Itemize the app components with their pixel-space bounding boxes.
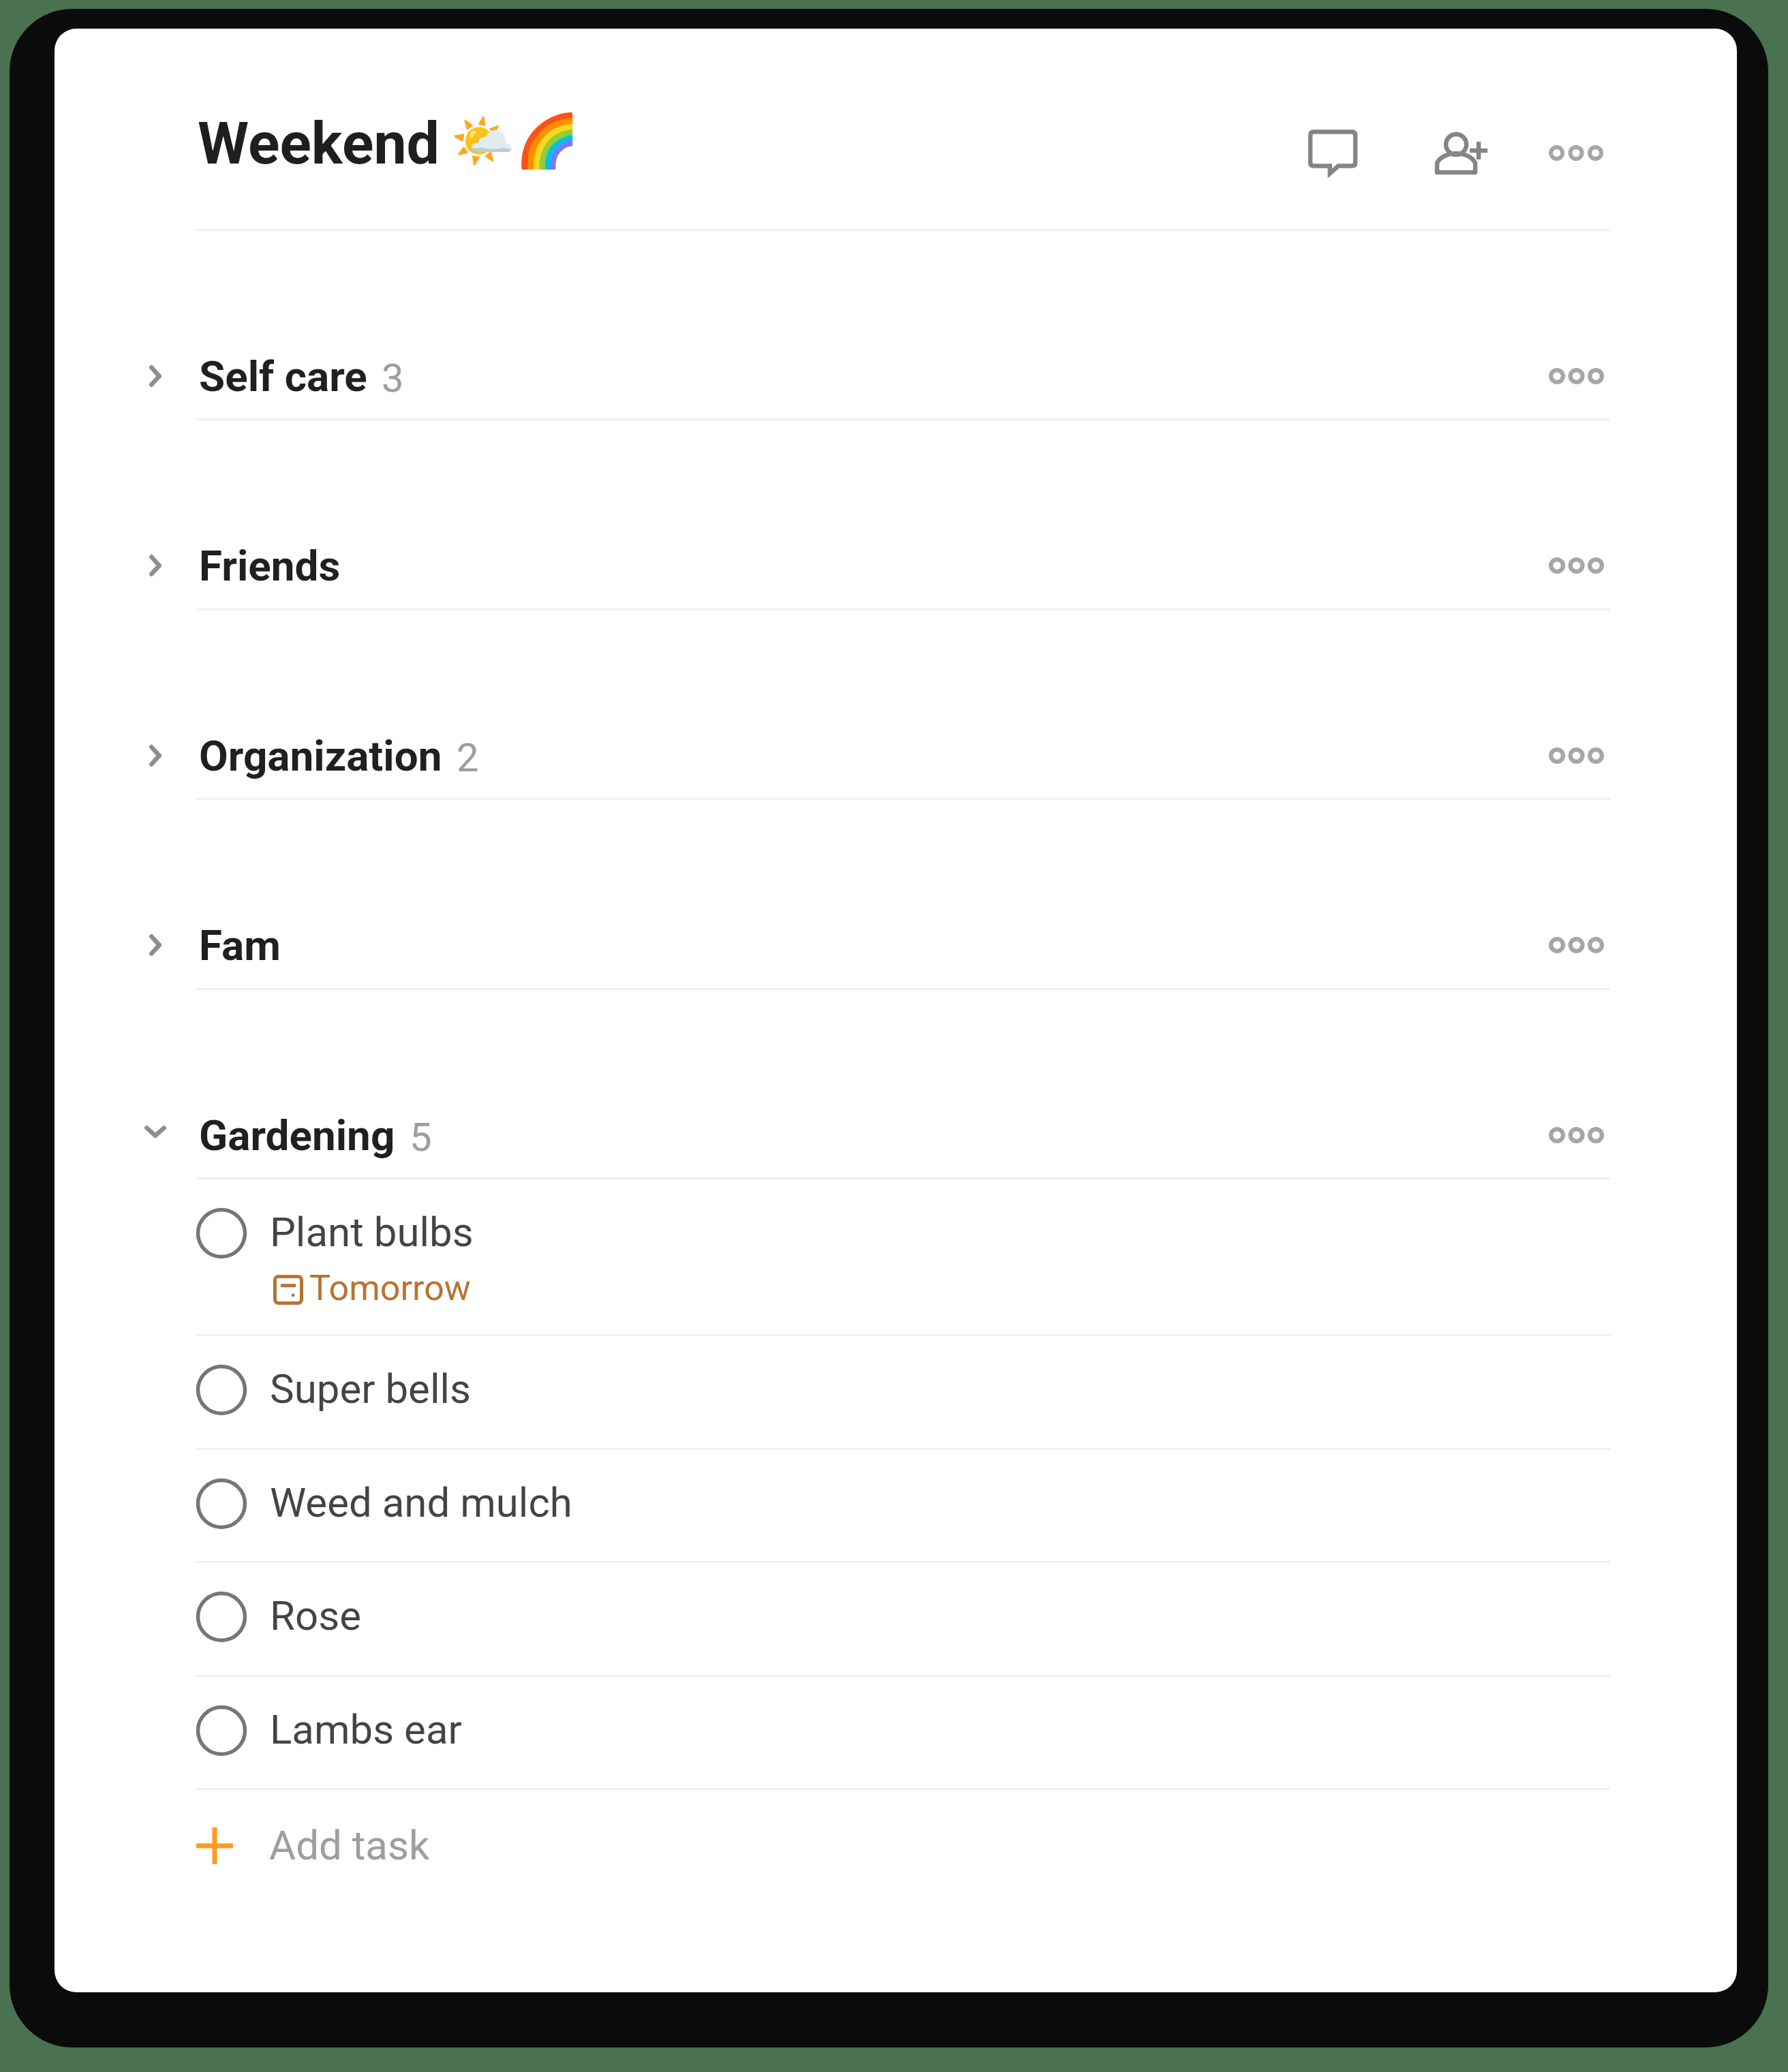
button[interactable]: Section options [1520,1079,1632,1191]
button[interactable]: Complete task [55,1675,1737,1789]
button[interactable]: Complete task [55,1561,1737,1675]
button[interactable]: Section options [1520,889,1632,1001]
staticText: 🌤️🌈 [450,110,580,171]
staticText: 5 [410,1114,432,1160]
staticText: Fam [199,921,281,970]
button[interactable]: Section options [1520,510,1632,621]
button[interactable]: Complete task [191,1473,252,1534]
button[interactable]: Self care [55,229,1737,418]
staticText: Organization [199,731,442,781]
button[interactable]: Complete task [55,1448,1737,1562]
staticText: Gardening [199,1111,395,1160]
staticText: Weekend [198,109,440,178]
button[interactable]: Complete task [191,1359,252,1421]
button[interactable]: Fam [55,798,1737,987]
button[interactable]: Complete task [55,1177,1737,1334]
staticText: Rose [270,1592,361,1639]
button[interactable]: Section options [1520,320,1632,432]
staticText: Super bells [270,1365,472,1412]
staticText: Lambs ear [270,1705,462,1753]
staticText: Add task [269,1821,430,1869]
button[interactable]: Gardening [55,988,1737,1177]
button[interactable]: Section options [1520,700,1632,811]
button[interactable]: Complete task [55,1334,1737,1448]
button[interactable]: Complete task [191,1700,252,1761]
staticText: 2 [457,735,479,781]
staticText: Tomorrow [309,1267,471,1309]
button[interactable]: Friends [55,418,1737,608]
button[interactable]: Organization [55,608,1737,798]
staticText: Friends [199,541,341,591]
staticText: Weed and mulch [270,1479,572,1526]
button[interactable]: Add task [55,1788,1737,1904]
staticText: 3 [382,355,404,401]
button[interactable]: Comments [1277,97,1389,208]
staticText: Self care [199,352,367,401]
button[interactable]: More options [1520,97,1632,208]
staticText: Plant bulbs [270,1208,474,1256]
button[interactable]: Complete task [191,1586,252,1648]
button[interactable]: Complete task [191,1203,252,1264]
button[interactable]: Add person [1401,99,1513,211]
